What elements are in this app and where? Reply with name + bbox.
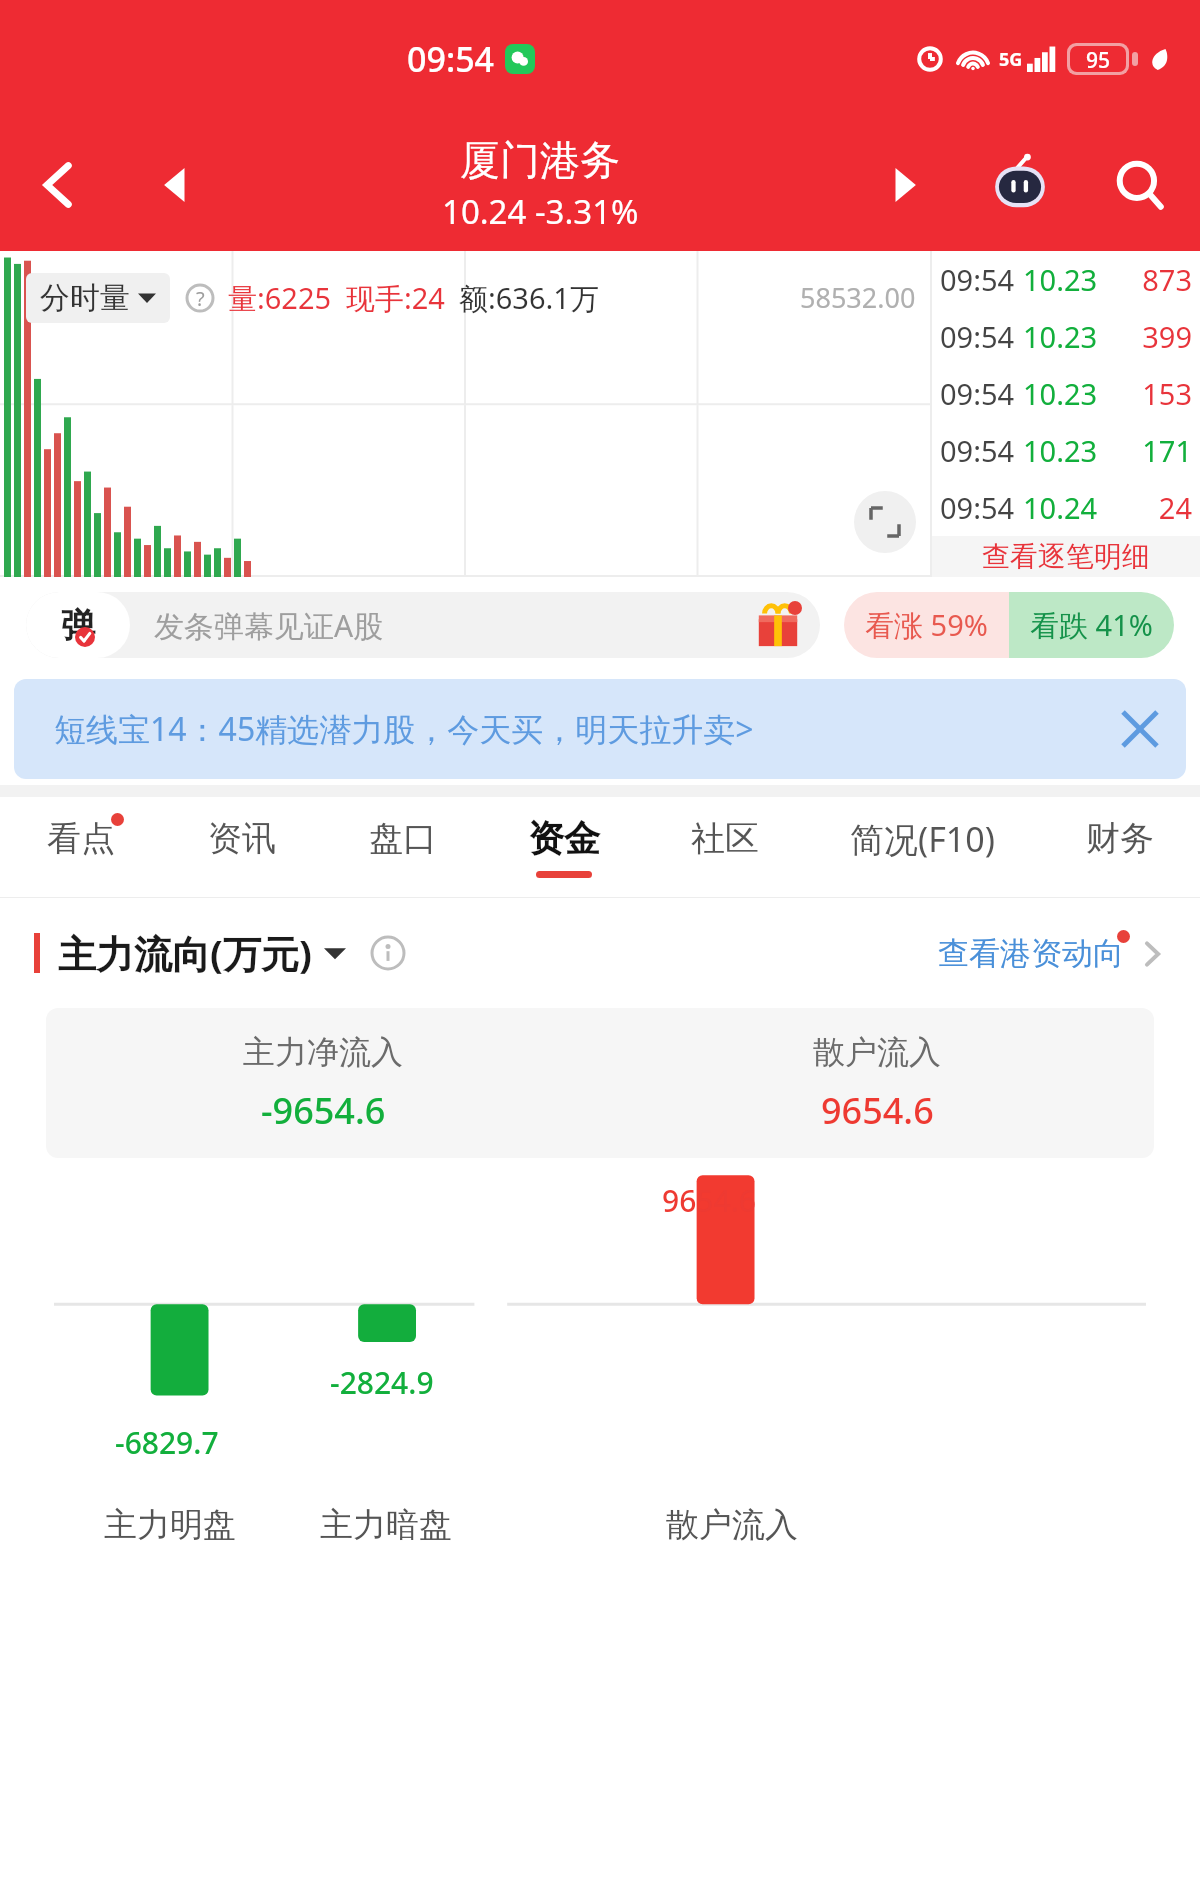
button[interactable]: 资讯 [161, 797, 322, 897]
button[interactable]: Back [0, 118, 120, 251]
staticText: 5G [999, 47, 1023, 72]
staticText: 看点 [47, 817, 115, 860]
staticText: 查看港资动向 [938, 934, 1124, 973]
button[interactable]: Search [1080, 118, 1200, 251]
staticText: 资金 [528, 816, 600, 861]
staticText: 盘口 [369, 817, 437, 860]
button[interactable]: Close ad [1094, 679, 1186, 779]
staticText: 95 [1086, 46, 1111, 72]
staticText: 查看逐笔明细 [982, 539, 1150, 574]
staticText: 量:6225 [228, 278, 332, 318]
staticText: 社区 [691, 817, 759, 860]
staticText: ? [196, 285, 205, 312]
button[interactable]: Help [184, 282, 216, 314]
button[interactable]: Next stock [850, 118, 960, 251]
staticText: 10.23 [1023, 317, 1098, 356]
staticText: 10.23 [1023, 260, 1098, 299]
button[interactable]: 财务 [1039, 797, 1200, 897]
button[interactable]: 资金 [483, 797, 644, 897]
button[interactable]: 查看逐笔明细 [932, 536, 1200, 577]
staticText: 09:54 [407, 36, 495, 82]
staticText: 09:54 [940, 374, 1015, 413]
staticText: 10.24 [1023, 488, 1098, 527]
button[interactable]: 看涨 59% [844, 592, 1009, 658]
button[interactable]: 查看港资动向 [938, 934, 1166, 973]
staticText: 发条弹幕见证A股 [154, 605, 384, 646]
staticText: 24 [1098, 488, 1192, 527]
button[interactable]: 看跌 41% [1009, 592, 1174, 658]
staticText: 资讯 [208, 817, 276, 860]
staticText: 9654.6 [821, 1086, 934, 1135]
button[interactable]: 短线宝14：45精选潜力股，今天买，明天拉升卖> [14, 679, 1186, 779]
staticText: 10.23 [1023, 431, 1098, 470]
staticText: 厦门港务 [460, 135, 620, 185]
staticText: 散户流入 [666, 1504, 798, 1546]
button[interactable]: 主力流向(万元) [58, 927, 346, 979]
button[interactable]: Fullscreen chart [854, 491, 916, 553]
button[interactable]: AI assistant [960, 118, 1080, 251]
button[interactable]: 分时量 [26, 273, 170, 323]
staticText: 额:636.1万 [459, 278, 599, 318]
button[interactable]: 厦门港务 [230, 135, 850, 234]
staticText: 10.24 -3.31% [442, 189, 639, 234]
staticText: 主力净流入 [243, 1032, 403, 1072]
button[interactable]: 社区 [644, 797, 805, 897]
staticText: 简况(F10) [850, 816, 995, 862]
staticText: -9654.6 [261, 1086, 386, 1135]
staticText: 主力暗盘 [320, 1504, 452, 1546]
staticText: -2824.9 [330, 1362, 434, 1403]
button[interactable]: Previous stock [120, 118, 230, 251]
staticText: 09:54 [940, 488, 1015, 527]
staticText: 主力明盘 [104, 1504, 236, 1546]
staticText: 看跌 41% [1030, 605, 1153, 645]
staticText: -6829.7 [115, 1422, 219, 1463]
staticText: 10.23 [1023, 374, 1098, 413]
button[interactable]: 弹 [26, 592, 820, 658]
button[interactable]: Info [368, 933, 408, 973]
button[interactable]: 看点 [0, 797, 161, 897]
staticText: 财务 [1086, 817, 1154, 860]
staticText: 散户流入 [813, 1032, 941, 1072]
staticText: 9654.6 [662, 1180, 756, 1221]
button[interactable]: 简况(F10) [805, 797, 1039, 897]
staticText: 09:54 [940, 260, 1015, 299]
staticText: 09:54 [940, 317, 1015, 356]
staticText: 399 [1098, 317, 1192, 356]
staticText: 09:54 [940, 431, 1015, 470]
staticText: 主力流向(万元) [58, 927, 312, 979]
staticText: 看涨 59% [865, 605, 988, 645]
staticText: 58532.00 [800, 279, 916, 316]
staticText: 弹 [61, 604, 95, 647]
button[interactable]: 主力净流入 [46, 1008, 1154, 1158]
staticText: 171 [1098, 431, 1192, 470]
button[interactable]: 盘口 [322, 797, 483, 897]
staticText: 现手:24 [346, 278, 445, 318]
staticText: 153 [1098, 374, 1192, 413]
staticText: 873 [1098, 260, 1192, 299]
staticText: 短线宝14：45精选潜力股，今天买，明天拉升卖> [54, 707, 754, 751]
staticText: 分时量 [40, 279, 130, 317]
